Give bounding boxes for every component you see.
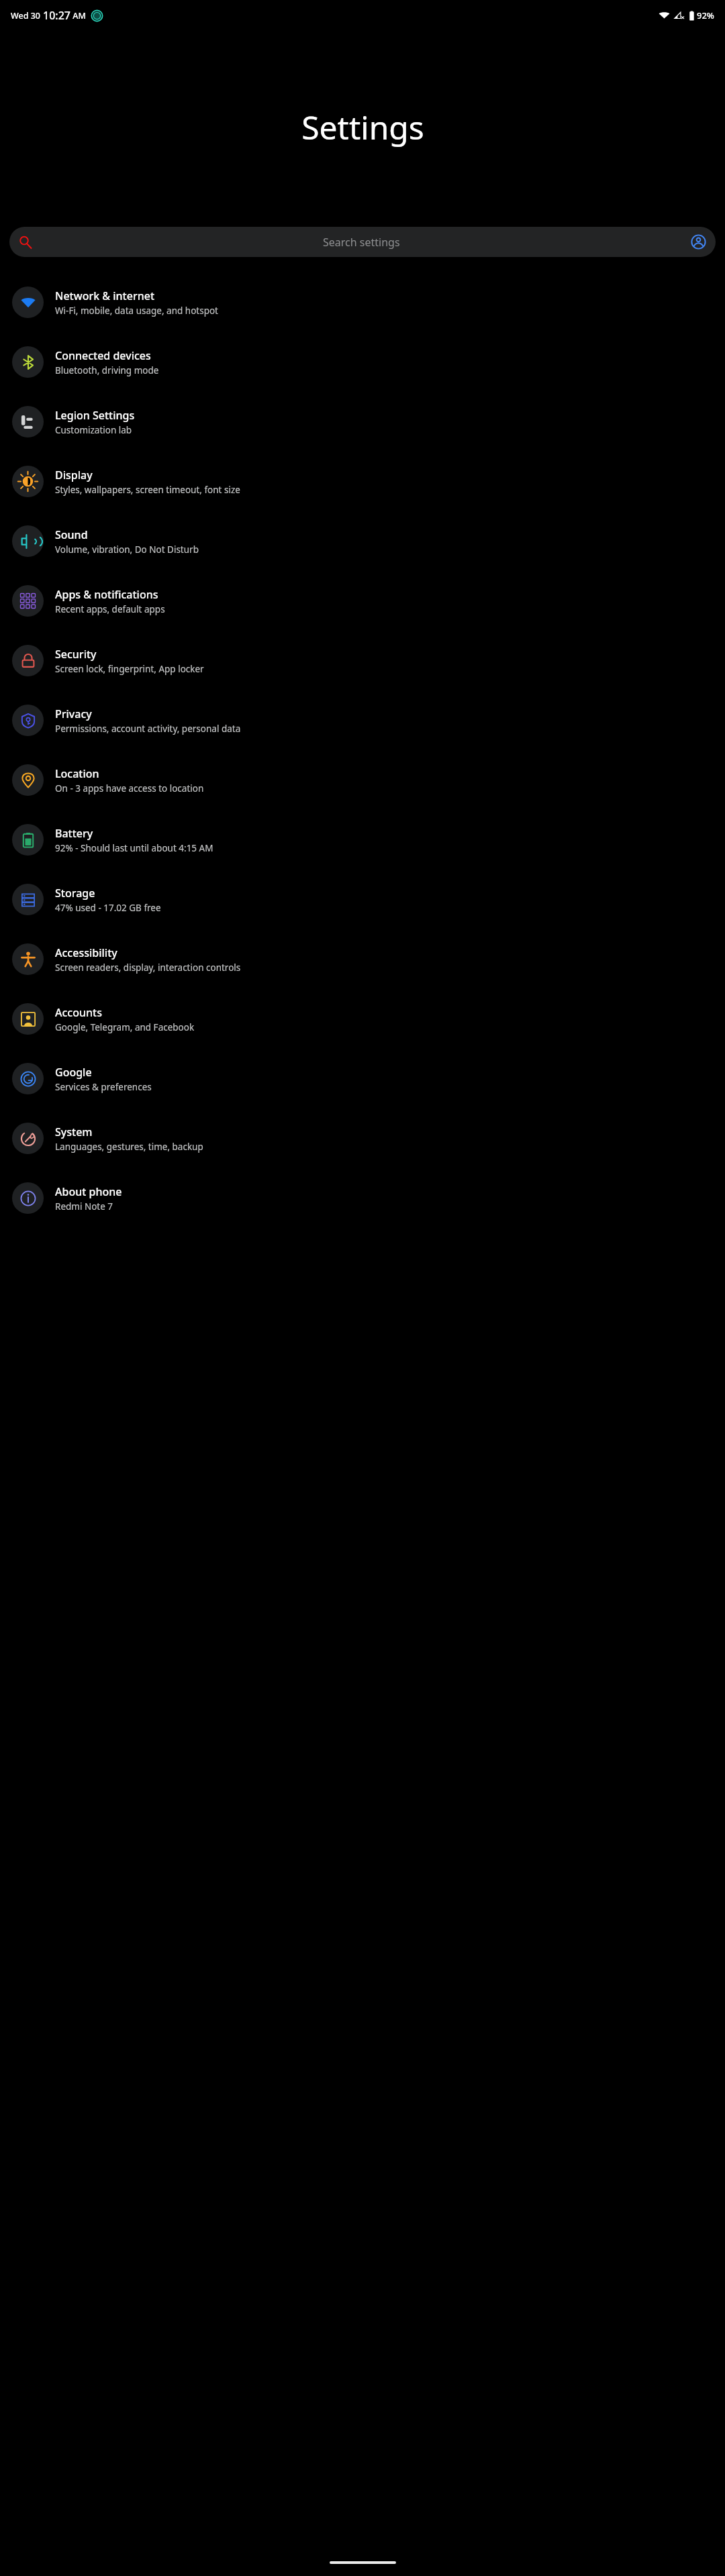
staticText: Bluetooth, driving mode — [55, 364, 159, 376]
staticText: Wed 30 — [11, 10, 43, 21]
staticText: AM — [70, 10, 86, 21]
staticText: 92% — [697, 9, 714, 21]
button[interactable]: Display — [0, 452, 725, 511]
staticText: Search settings — [323, 235, 400, 250]
staticText: Display — [55, 468, 93, 482]
staticText: Google, Telegram, and Facebook — [55, 1021, 195, 1033]
staticText: Services & preferences — [55, 1081, 152, 1093]
button[interactable]: Network & internet — [0, 272, 725, 332]
other: Account — [691, 234, 706, 250]
staticText: Accounts — [55, 1005, 102, 1020]
button[interactable]: Google — [0, 1049, 725, 1109]
staticText: 92% - Should last until about 4:15 AM — [55, 842, 213, 854]
staticText: Connected devices — [55, 348, 151, 363]
button[interactable]: Search settings — [9, 227, 716, 257]
staticText: Screen lock, fingerprint, App locker — [55, 663, 204, 675]
staticText: Recent apps, default apps — [55, 603, 165, 615]
staticText: Apps & notifications — [55, 587, 158, 602]
staticText: Legion Settings — [55, 408, 135, 423]
button[interactable]: Battery — [0, 810, 725, 870]
button[interactable]: Apps & notifications — [0, 571, 725, 631]
staticText: Sound — [55, 527, 88, 542]
button[interactable]: System — [0, 1109, 725, 1168]
button[interactable]: Accessibility — [0, 929, 725, 989]
staticText: Volume, vibration, Do Not Disturb — [55, 544, 199, 556]
staticText: Location — [55, 766, 99, 781]
staticText: Accessibility — [55, 945, 117, 960]
staticText: 47% used - 17.02 GB free — [55, 902, 161, 914]
staticText: On - 3 apps have access to location — [55, 782, 204, 794]
staticText: Redmi Note 7 — [55, 1200, 113, 1213]
staticText: System — [55, 1125, 93, 1139]
staticText: Privacy — [55, 707, 92, 721]
staticText: Storage — [55, 886, 95, 900]
button[interactable]: Location — [0, 750, 725, 810]
staticText: Styles, wallpapers, screen timeout, font… — [55, 484, 240, 496]
button[interactable]: Accounts — [0, 989, 725, 1049]
staticText: Google — [55, 1065, 92, 1080]
staticText: Languages, gestures, time, backup — [55, 1141, 203, 1153]
button[interactable]: Legion Settings — [0, 392, 725, 452]
staticText: Screen readers, display, interaction con… — [55, 962, 241, 974]
button[interactable]: Privacy — [0, 690, 725, 750]
staticText: Wi-Fi, mobile, data usage, and hotspot — [55, 305, 218, 317]
button[interactable]: Sound — [0, 511, 725, 571]
staticText: About phone — [55, 1184, 122, 1199]
staticText: Permissions, account activity, personal … — [55, 723, 241, 735]
button[interactable]: Storage — [0, 870, 725, 929]
staticText: Security — [55, 647, 97, 662]
staticText: Settings — [301, 105, 424, 149]
button[interactable]: About phone — [0, 1168, 725, 1228]
button[interactable]: Connected devices — [0, 332, 725, 392]
staticText: Network & internet — [55, 289, 155, 303]
staticText: Customization lab — [55, 424, 132, 436]
staticText: Battery — [55, 826, 93, 841]
staticText: 10:27 — [43, 8, 70, 23]
button[interactable]: Security — [0, 631, 725, 690]
